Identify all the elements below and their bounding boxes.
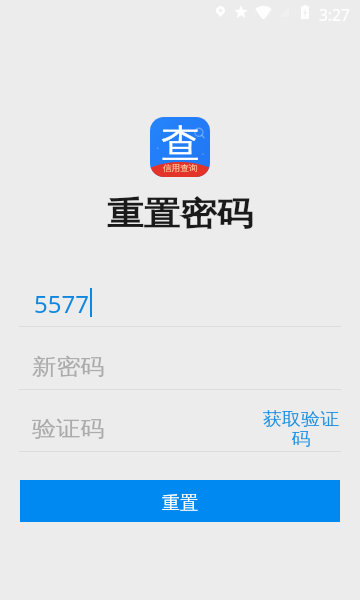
staticText: 重置密码	[107, 193, 253, 234]
staticText: 新密码	[32, 354, 105, 381]
button[interactable]: 新密码	[19, 347, 341, 389]
button[interactable]: 5577	[19, 284, 341, 326]
button[interactable]: 重置	[20, 480, 340, 522]
button[interactable]: 获取验证码	[262, 408, 340, 454]
button[interactable]: 验证码	[19, 409, 341, 451]
staticText: 3:27	[319, 4, 350, 25]
staticText: 重置	[162, 492, 198, 515]
staticText: 信用查询	[163, 163, 198, 174]
staticText: 5577	[34, 287, 89, 320]
staticText: 验证码	[32, 416, 105, 443]
staticText: 获取验证码	[262, 408, 340, 449]
staticText: 查	[161, 119, 200, 168]
